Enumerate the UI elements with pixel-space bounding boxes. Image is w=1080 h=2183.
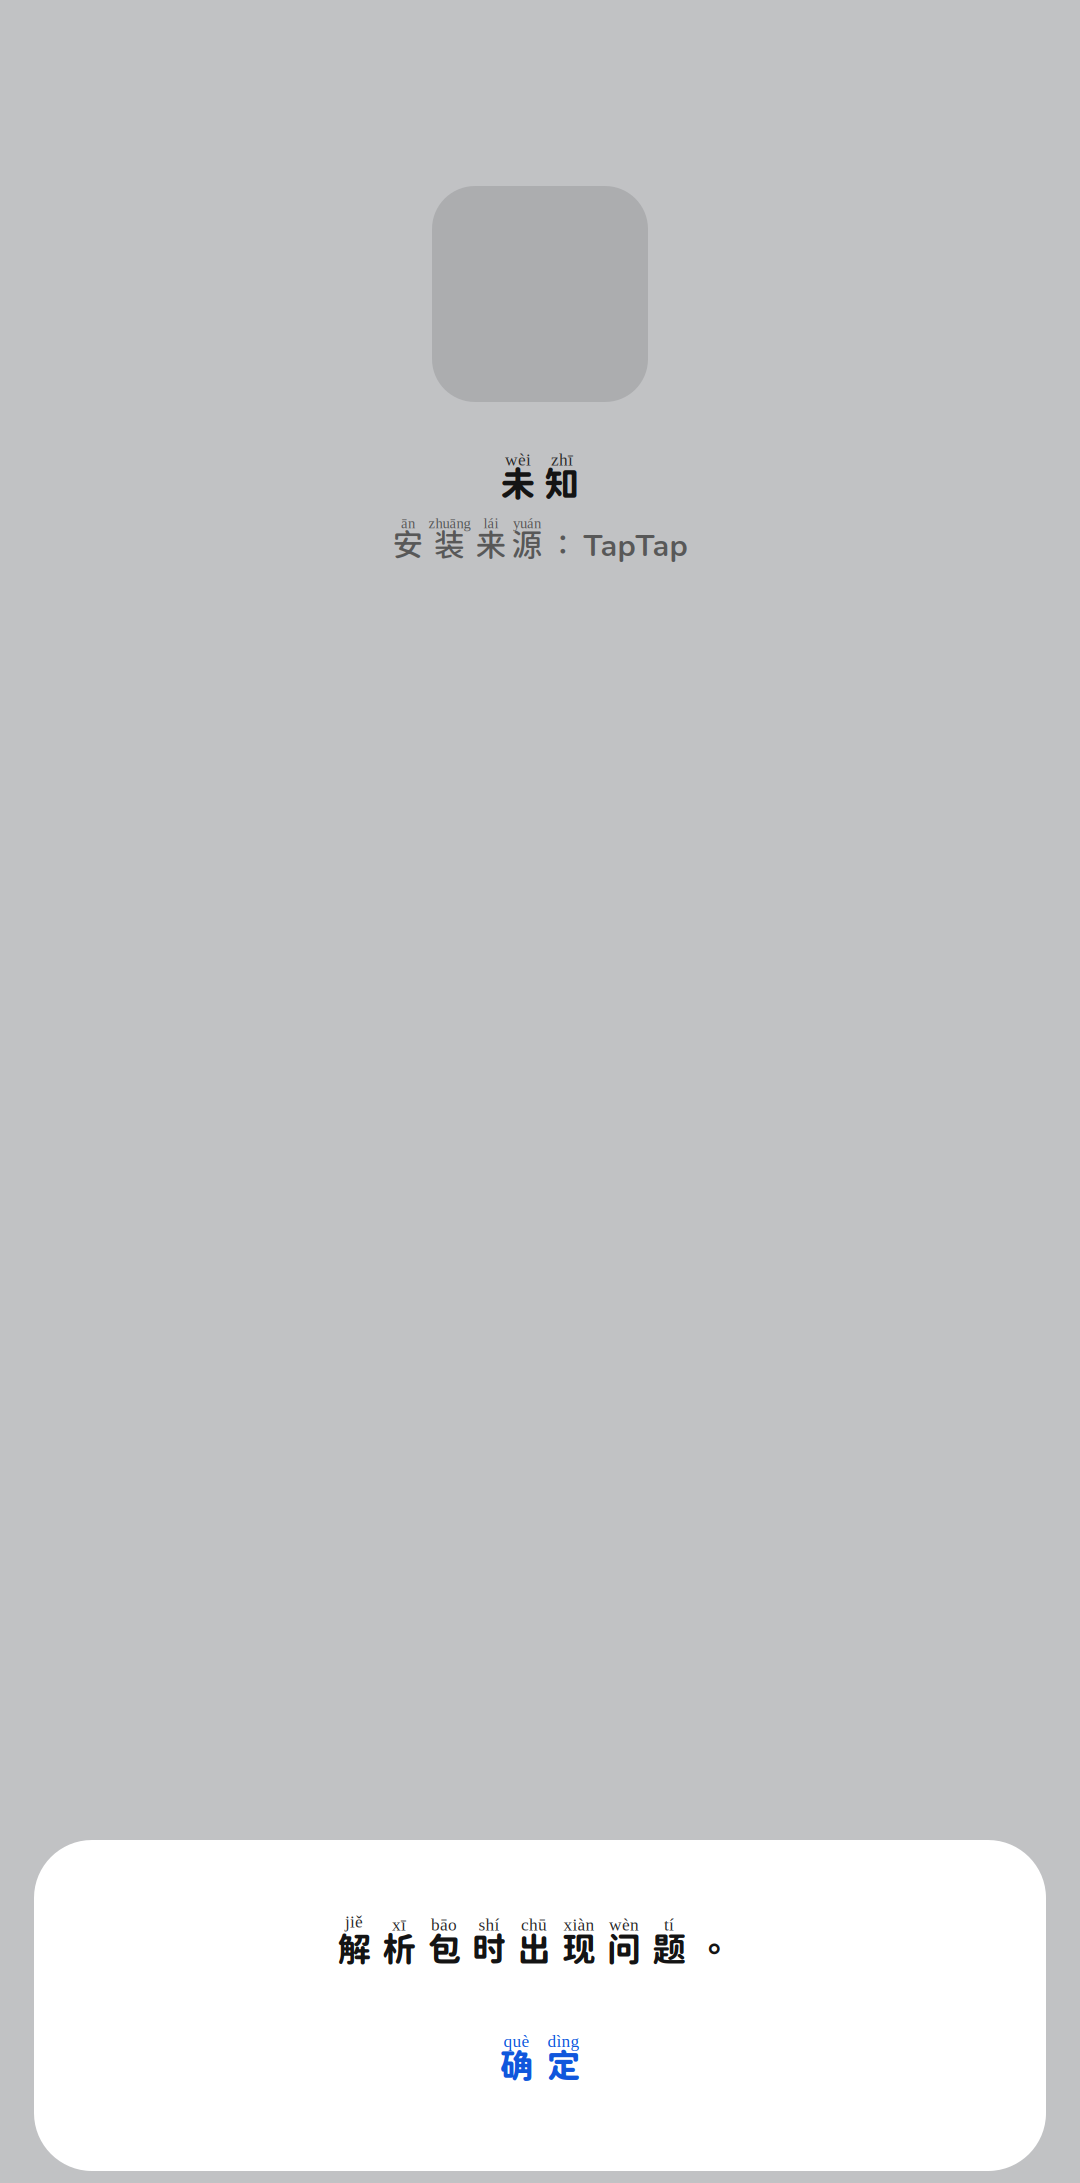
staticText: 装 xyxy=(434,526,465,562)
staticText: 。 xyxy=(697,1929,730,1968)
staticText: tí xyxy=(664,1915,674,1934)
staticText: 时 xyxy=(472,1929,505,1968)
staticText: zhuāng xyxy=(428,515,470,531)
staticText: 析 xyxy=(382,1929,415,1968)
staticText: bāo xyxy=(431,1915,457,1934)
staticText: què xyxy=(503,2031,529,2051)
staticText: wèn xyxy=(609,1915,639,1934)
staticText: xī xyxy=(392,1915,406,1934)
staticText: dìng xyxy=(547,2031,579,2051)
staticText: 解 xyxy=(337,1929,370,1968)
staticText: 安 xyxy=(392,526,423,562)
staticText: wèi xyxy=(505,450,531,469)
staticText: yuán xyxy=(513,515,541,531)
staticText: 题 xyxy=(652,1929,685,1968)
staticText: xiàn xyxy=(563,1915,594,1934)
staticText: 未 xyxy=(500,463,535,504)
staticText: 确 xyxy=(500,2046,533,2085)
staticText: shí xyxy=(478,1915,499,1934)
staticText: jiě xyxy=(345,1912,363,1931)
staticText: 来 xyxy=(475,526,506,562)
staticText: zhī xyxy=(551,450,573,469)
staticText: 问 xyxy=(607,1929,640,1968)
staticText: ： xyxy=(547,526,578,562)
staticText: 包 xyxy=(427,1929,460,1968)
staticText: 源 xyxy=(511,526,542,562)
staticText: 现 xyxy=(562,1929,595,1968)
staticText: ān xyxy=(401,515,415,531)
button[interactable]: 确定 xyxy=(440,2021,640,2095)
staticText: 知 xyxy=(544,463,579,504)
staticText: 定 xyxy=(547,2046,580,2085)
staticText: 出 xyxy=(517,1929,550,1968)
staticText: TapTap xyxy=(583,526,687,562)
staticText: lái xyxy=(483,515,498,531)
staticText: chū xyxy=(521,1915,547,1934)
